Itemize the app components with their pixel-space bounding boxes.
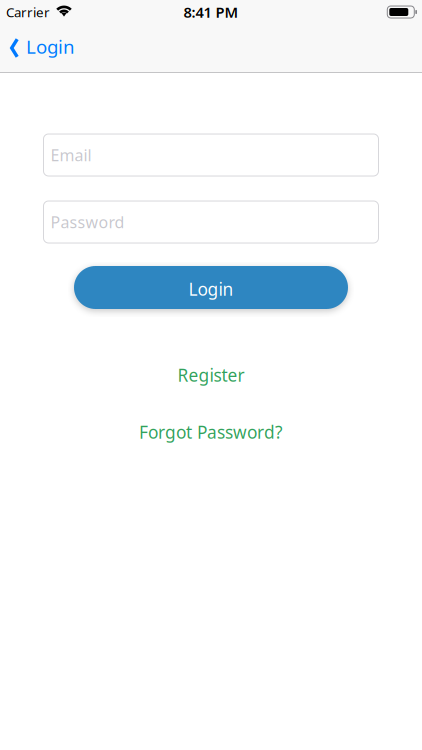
- staticText: 8:41 PM: [183, 2, 238, 22]
- button[interactable]: Register: [177, 364, 244, 386]
- staticText: Login: [26, 34, 75, 59]
- staticText: Password: [50, 211, 124, 233]
- staticText: Register: [177, 363, 244, 386]
- button[interactable]: Login: [74, 266, 348, 309]
- staticText: Login: [188, 277, 233, 300]
- button[interactable]: Forgot Password?: [139, 421, 283, 443]
- staticText: Forgot Password?: [139, 420, 283, 443]
- staticText: Email: [50, 144, 91, 166]
- staticText: Carrier: [6, 3, 50, 21]
- button[interactable]: Back: [10, 36, 75, 60]
